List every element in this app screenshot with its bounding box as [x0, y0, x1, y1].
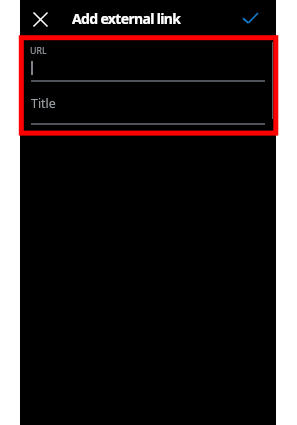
staticText: Title — [31, 95, 56, 112]
staticText: URL — [30, 45, 47, 57]
staticText: Add external link — [72, 9, 181, 28]
button[interactable]: Save — [235, 4, 265, 34]
button[interactable]: Title — [31, 82, 265, 125]
button[interactable]: Close — [27, 6, 53, 32]
button[interactable]: URL — [31, 38, 265, 82]
